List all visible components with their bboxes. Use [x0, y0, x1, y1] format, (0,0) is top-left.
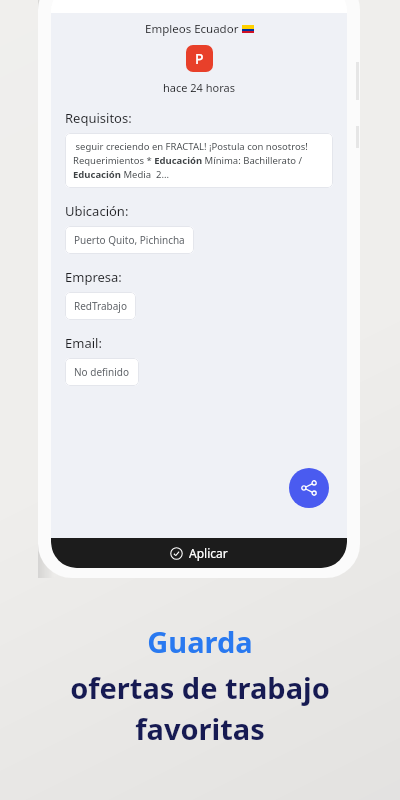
button[interactable]: Compartir [289, 468, 329, 508]
button[interactable]: Puerto Quito, Pichincha [65, 226, 194, 254]
staticText: Ubicación: [65, 202, 129, 220]
staticText: Aplicar [189, 545, 228, 561]
staticText: Requisitos: [65, 109, 132, 127]
staticText: favoritas [135, 709, 265, 748]
staticText: Puerto Quito, Pichincha [74, 233, 185, 247]
staticText: P [195, 49, 204, 68]
button[interactable]: RedTrabajo [65, 292, 136, 320]
staticText: Empleos Ecuador [145, 21, 242, 37]
staticText: hace 24 horas [163, 80, 235, 95]
staticText: Guarda [147, 622, 253, 661]
staticText: ofertas de trabajo [70, 668, 330, 707]
button[interactable]: seguir creciendo en FRACTAL! ¡Postula co… [65, 133, 333, 188]
button[interactable]: Aplicar [51, 538, 347, 568]
staticText: RedTrabajo [74, 299, 127, 313]
staticText: Email: [65, 334, 102, 352]
staticText: Empresa: [65, 268, 122, 286]
staticText: seguir creciendo en FRACTAL! ¡Postula co… [73, 140, 325, 181]
button[interactable]: No definido [65, 358, 139, 386]
staticText: No definido [74, 365, 130, 379]
